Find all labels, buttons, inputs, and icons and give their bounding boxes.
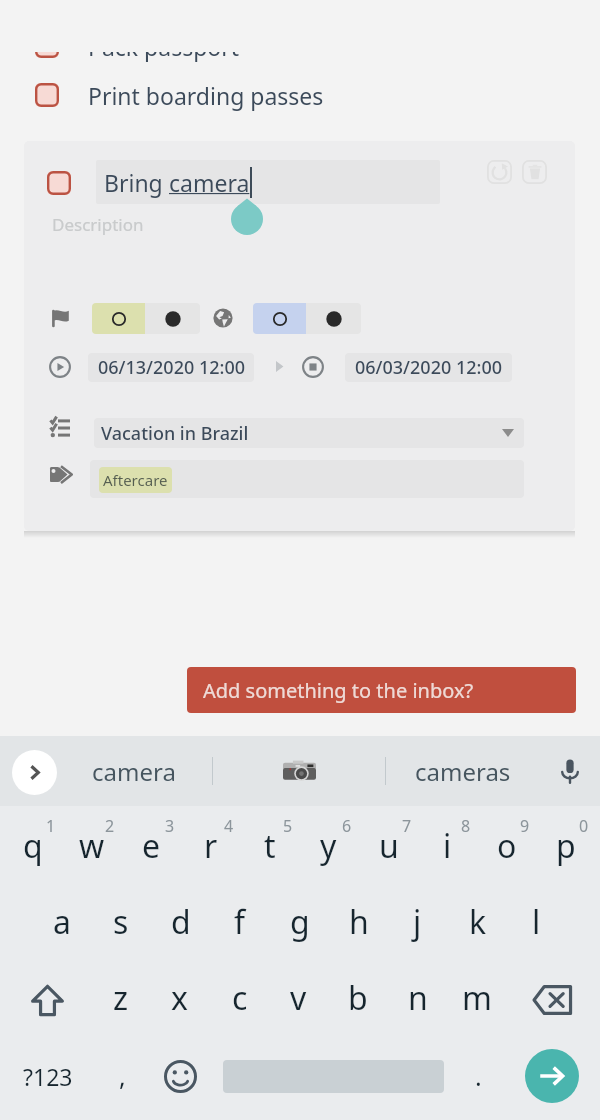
button[interactable]: b bbox=[328, 960, 387, 1036]
staticText: e bbox=[142, 824, 161, 868]
staticText: 06/03/2020 12:00 bbox=[355, 355, 502, 380]
button[interactable]: Voice input bbox=[548, 749, 592, 793]
button[interactable]: Bring bbox=[96, 160, 440, 204]
button[interactable]: Due date bbox=[296, 350, 330, 384]
button[interactable]: Start date bbox=[43, 350, 77, 384]
button[interactable]: Visibility bbox=[206, 301, 240, 335]
staticText: h bbox=[349, 900, 369, 944]
button[interactable]: v bbox=[269, 960, 328, 1036]
button[interactable]: Toggle complete bbox=[0, 71, 600, 119]
staticText: y bbox=[320, 824, 337, 868]
button[interactable]: w bbox=[62, 808, 121, 884]
button[interactable]: camera bbox=[74, 736, 194, 806]
button[interactable]: x bbox=[150, 960, 209, 1036]
button[interactable]: r bbox=[181, 808, 240, 884]
button[interactable]: Backspace bbox=[516, 964, 588, 1036]
button[interactable]: Aftercare bbox=[99, 467, 172, 493]
button[interactable]: Project bbox=[43, 411, 77, 445]
button[interactable]: s bbox=[91, 884, 150, 960]
staticText: 9 bbox=[520, 815, 530, 837]
button[interactable]: k bbox=[448, 884, 507, 960]
staticText: 06/13/2020 12:00 bbox=[98, 355, 245, 380]
button[interactable]: o bbox=[477, 808, 536, 884]
button[interactable]: 06/13/2020 12:00 bbox=[88, 353, 254, 382]
button[interactable]: Selected option bbox=[145, 303, 200, 334]
button[interactable]: g bbox=[270, 884, 329, 960]
button[interactable]: i bbox=[418, 808, 477, 884]
staticText: Print boarding passes bbox=[88, 80, 324, 111]
staticText: x bbox=[171, 976, 188, 1020]
staticText: Add something to the inbox? bbox=[203, 677, 474, 704]
button[interactable]: More suggestions bbox=[12, 750, 57, 795]
staticText: r bbox=[204, 824, 218, 868]
button[interactable]: Toggle complete bbox=[47, 171, 71, 195]
staticText: 2 bbox=[105, 815, 115, 837]
button[interactable]: 06/03/2020 12:00 bbox=[345, 353, 512, 382]
button[interactable]: j bbox=[388, 884, 447, 960]
staticText: 7 bbox=[402, 815, 412, 837]
button[interactable]: e bbox=[122, 808, 181, 884]
button[interactable]: t bbox=[240, 808, 299, 884]
button[interactable]: q bbox=[3, 808, 62, 884]
staticText: z bbox=[113, 976, 129, 1020]
button[interactable]: Repeat bbox=[487, 160, 512, 184]
staticText: camera bbox=[169, 167, 250, 198]
staticText: b bbox=[348, 976, 368, 1020]
button[interactable]: Emoji bbox=[150, 1040, 210, 1112]
staticText: k bbox=[469, 900, 487, 944]
button[interactable]: Shift bbox=[11, 964, 83, 1036]
button[interactable]: Vacation in Brazil bbox=[94, 418, 524, 448]
button[interactable]: Toggle complete bbox=[35, 34, 59, 58]
button[interactable]: m bbox=[447, 960, 506, 1036]
button[interactable]: p bbox=[536, 808, 595, 884]
staticText: q bbox=[23, 824, 43, 868]
staticText: Aftercare bbox=[103, 470, 168, 490]
button[interactable]: Selected option bbox=[306, 303, 361, 334]
button[interactable]: f bbox=[210, 884, 269, 960]
staticText: u bbox=[379, 824, 399, 868]
button[interactable]: n bbox=[388, 960, 447, 1036]
button[interactable]: cameras bbox=[403, 736, 523, 806]
button[interactable]: ?123 bbox=[12, 1040, 84, 1112]
staticText: c bbox=[232, 976, 248, 1020]
staticText: 6 bbox=[342, 815, 352, 837]
button[interactable]: Camera emoji bbox=[240, 736, 358, 806]
button[interactable]: . bbox=[452, 1040, 504, 1112]
staticText: 8 bbox=[461, 815, 471, 837]
button[interactable]: , bbox=[92, 1040, 152, 1112]
button[interactable]: Enter bbox=[509, 1040, 595, 1112]
button[interactable]: h bbox=[329, 884, 388, 960]
button[interactable]: u bbox=[359, 808, 418, 884]
staticText: f bbox=[234, 900, 246, 944]
staticText: i bbox=[443, 824, 452, 868]
staticText: ?123 bbox=[23, 1061, 73, 1092]
staticText: . bbox=[475, 1059, 482, 1093]
staticText: o bbox=[497, 824, 517, 868]
button[interactable]: Add something to the inbox? bbox=[187, 667, 576, 713]
button[interactable]: Option bbox=[253, 303, 306, 334]
button[interactable]: d bbox=[151, 884, 210, 960]
button[interactable]: Toggle complete bbox=[35, 83, 59, 107]
button[interactable]: c bbox=[210, 960, 269, 1036]
staticText: Vacation in Brazil bbox=[101, 421, 249, 446]
staticText: d bbox=[171, 900, 191, 944]
staticText: v bbox=[290, 976, 307, 1020]
button[interactable]: a bbox=[32, 884, 91, 960]
staticText: cameras bbox=[415, 755, 511, 788]
button[interactable]: Option bbox=[92, 303, 145, 334]
staticText: g bbox=[290, 900, 310, 944]
button[interactable]: Delete bbox=[522, 160, 547, 184]
button[interactable]: Space bbox=[214, 1040, 452, 1112]
button[interactable]: Tags bbox=[43, 457, 77, 491]
button[interactable]: l bbox=[507, 884, 566, 960]
button[interactable]: z bbox=[91, 960, 150, 1036]
staticText: 4 bbox=[224, 815, 234, 837]
button[interactable]: Priority bbox=[43, 301, 77, 335]
button[interactable]: Aftercare bbox=[90, 460, 524, 498]
staticText: , bbox=[119, 1059, 126, 1093]
staticText: w bbox=[79, 824, 105, 868]
button[interactable]: Toggle complete bbox=[0, 22, 600, 70]
staticText: j bbox=[413, 900, 422, 944]
button[interactable]: y bbox=[299, 808, 358, 884]
staticText: Description bbox=[52, 213, 144, 236]
